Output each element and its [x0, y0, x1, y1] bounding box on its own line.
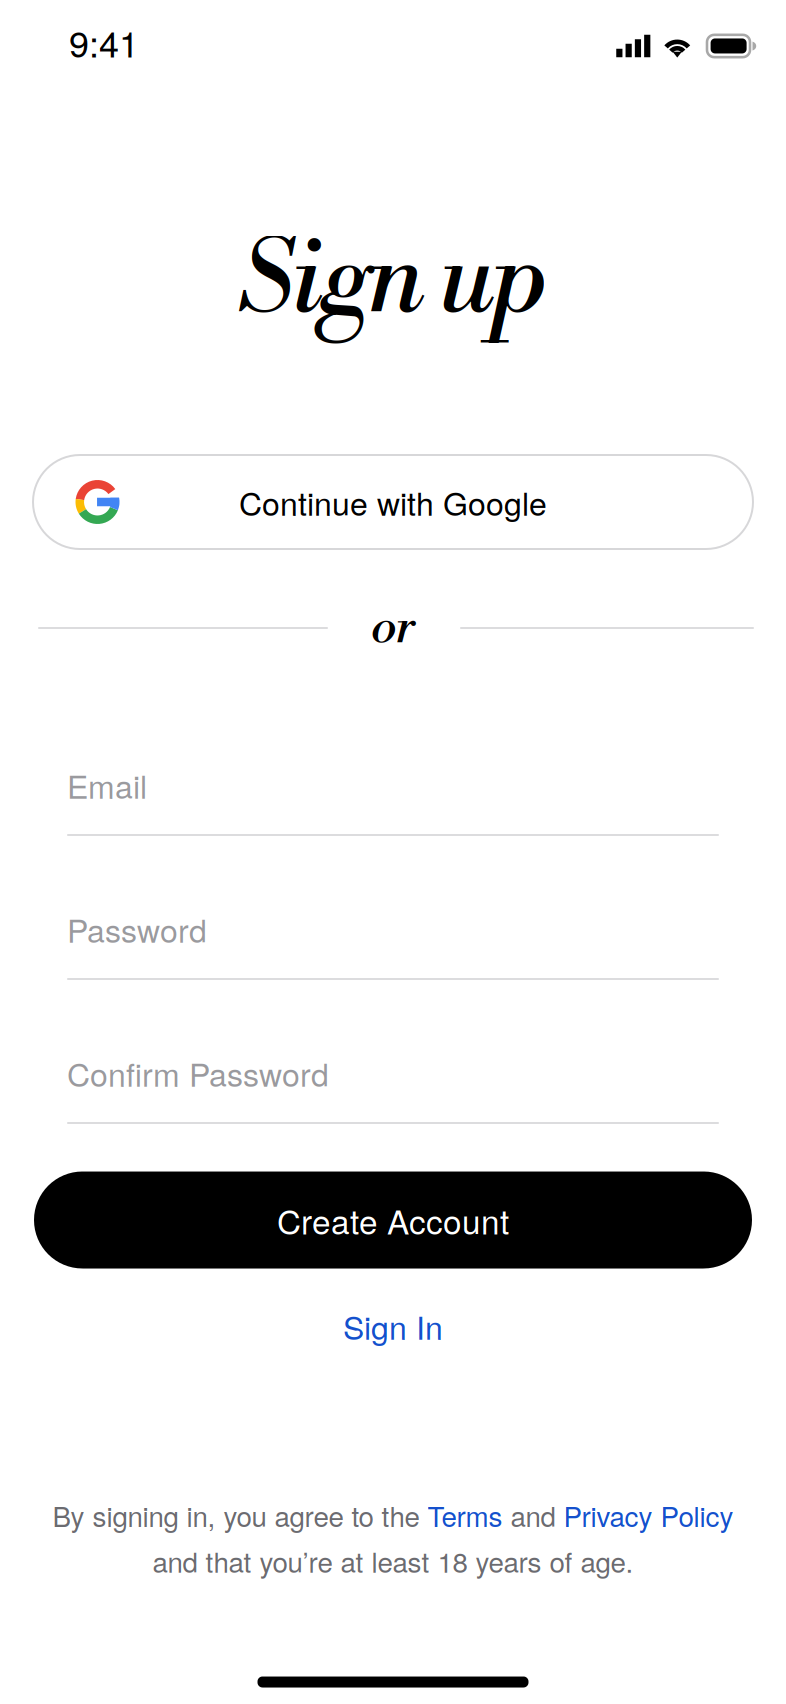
staticText: Password: [67, 906, 207, 952]
button[interactable]: Email: [67, 762, 719, 836]
staticText: or: [371, 598, 415, 658]
staticText: Terms: [427, 1495, 502, 1535]
button[interactable]: Continue with Google: [33, 455, 753, 549]
button[interactable]: Privacy Policy: [563, 1495, 733, 1535]
staticText: and that you’re at least 18 years of age…: [152, 1541, 633, 1581]
button[interactable]: Password: [67, 906, 719, 980]
staticText: Continue with Google: [239, 479, 547, 525]
staticText: 9:41: [69, 16, 139, 68]
button[interactable]: Create Account: [34, 1171, 752, 1268]
button[interactable]: Sign In: [273, 1295, 513, 1357]
staticText: Sign up: [237, 220, 549, 344]
button[interactable]: Confirm Password: [67, 1050, 719, 1124]
staticText: Create Account: [277, 1196, 509, 1244]
staticText: By signing in, you agree to the: [52, 1495, 427, 1535]
staticText: Privacy Policy: [563, 1495, 733, 1535]
staticText: Sign In: [343, 1303, 443, 1349]
button[interactable]: Terms: [427, 1495, 502, 1535]
staticText: and: [502, 1495, 563, 1535]
staticText: Email: [67, 762, 147, 808]
staticText: Confirm Password: [67, 1050, 329, 1096]
